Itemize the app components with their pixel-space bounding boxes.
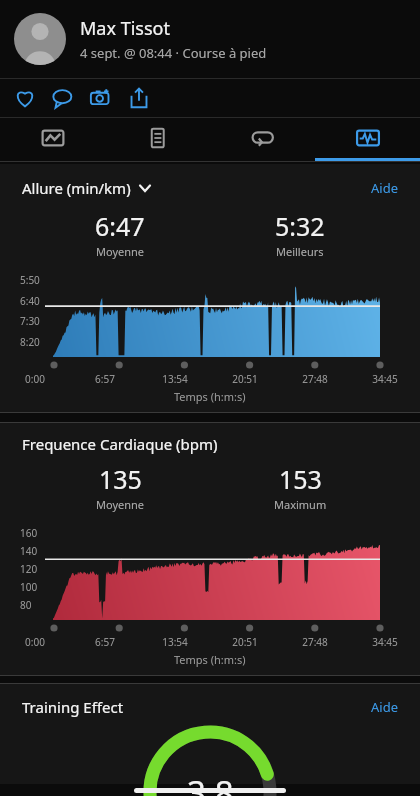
staticText: Maximum [274,497,327,512]
staticText: 0:00 [25,372,45,386]
staticText: Training Effect [22,697,124,717]
staticText: Moyenne [96,244,145,259]
staticText: 6:47 [95,209,145,243]
staticText: 80 [20,598,32,612]
staticText: 5:50 [20,273,40,287]
staticText: 27:48 [302,635,328,649]
button[interactable]: Change metric [138,181,152,195]
button[interactable]: Aide [367,175,402,201]
staticText: Max Tissot [80,16,170,41]
staticText: 7:30 [20,314,40,328]
staticText: 6:57 [95,372,115,386]
button[interactable]: Add photo [84,81,118,115]
button[interactable]: Charts [315,118,420,161]
button[interactable]: Share [122,81,156,115]
button[interactable]: Max Tissot [0,0,420,78]
button[interactable]: Aide [367,694,402,720]
staticText: Moyenne [96,497,145,512]
staticText: Aide [371,179,398,197]
staticText: 20:51 [232,635,258,649]
staticText: Aide [371,698,398,716]
staticText: Frequence Cardiaque (bpm) [22,434,218,454]
staticText: Allure (min/km) [22,178,131,198]
staticText: 3,8 [187,770,234,796]
staticText: 34:45 [372,635,398,649]
staticText: 6:57 [95,635,115,649]
staticText: 6:40 [20,294,40,308]
button[interactable]: Map [0,118,105,161]
button[interactable]: Like [8,81,42,115]
staticText: 8:20 [20,335,40,349]
staticText: Temps (h:m:s) [174,389,246,404]
button[interactable]: Comment [46,81,80,115]
staticText: 153 [279,462,322,496]
staticText: 27:48 [302,372,328,386]
button[interactable]: Laps [210,118,315,161]
staticText: 135 [99,462,142,496]
staticText: Meilleurs [276,244,324,259]
staticText: 4 sept. @ 08:44 · Course à pied [80,44,267,62]
staticText: 100 [20,580,38,594]
staticText: 120 [20,562,38,576]
staticText: 34:45 [372,372,398,386]
staticText: 13:54 [162,372,188,386]
staticText: 140 [20,544,38,558]
staticText: 0:00 [25,635,45,649]
staticText: 13:54 [162,635,188,649]
staticText: 20:51 [232,372,258,386]
staticText: 160 [20,526,38,540]
staticText: 5:32 [275,209,325,243]
staticText: Temps (h:m:s) [174,652,246,667]
button[interactable]: Details [105,118,210,161]
